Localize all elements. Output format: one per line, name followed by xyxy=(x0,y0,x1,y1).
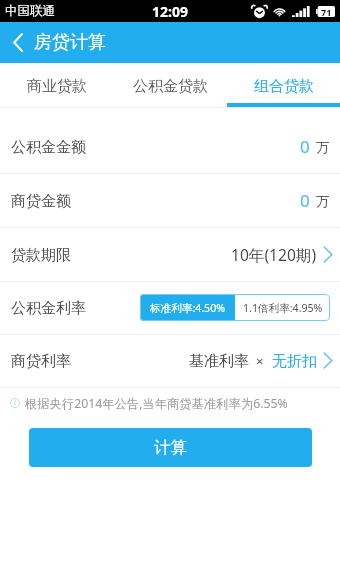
button[interactable]: 商业贷款 xyxy=(0,63,114,107)
staticText: 商业贷款 xyxy=(27,77,87,96)
staticText: × xyxy=(256,352,264,370)
button[interactable]: 公积金金额 xyxy=(0,120,340,173)
staticText: 标准利率:4.50% xyxy=(150,301,226,315)
staticText: 1.1倍利率:4.95% xyxy=(243,301,323,315)
button[interactable]: 计算 xyxy=(29,428,312,467)
staticText: 中国联通 xyxy=(5,3,55,19)
staticText: 公积金贷款 xyxy=(133,77,208,96)
staticText: 组合贷款 xyxy=(254,77,314,96)
other: Back xyxy=(13,34,23,51)
button[interactable]: 组合贷款 xyxy=(227,63,340,107)
staticText: 0 xyxy=(300,189,310,212)
staticText: 贷款期限 xyxy=(11,246,71,265)
staticText: 基准利率 xyxy=(189,352,249,371)
button[interactable]: Back xyxy=(0,31,114,54)
button[interactable]: 标准利率:4.50% xyxy=(140,294,235,321)
staticText: 公积金利率 xyxy=(11,299,86,318)
staticText: 房贷计算 xyxy=(34,31,106,54)
staticText: 商贷金额 xyxy=(11,192,71,211)
button[interactable]: 商贷利率 xyxy=(0,334,340,387)
button[interactable]: 公积金利率 xyxy=(0,281,340,334)
staticText: 商贷利率 xyxy=(11,352,71,371)
staticText: 万 xyxy=(316,193,330,210)
button[interactable]: 贷款期限 xyxy=(0,227,340,281)
button[interactable]: 商贷金额 xyxy=(0,173,340,227)
staticText: 万 xyxy=(316,139,330,156)
staticText: 0 xyxy=(300,135,310,158)
staticText: 根据央行2014年公告,当年商贷基准利率为6.55% xyxy=(25,395,288,412)
staticText: 公积金金额 xyxy=(11,138,86,157)
staticText: 计算 xyxy=(154,437,187,458)
staticText: 71 xyxy=(321,6,332,17)
staticText: 10年(120期) xyxy=(231,244,317,265)
button[interactable]: 1.1倍利率:4.95% xyxy=(235,294,330,321)
staticText: 12:09 xyxy=(152,2,188,21)
button[interactable]: 公积金贷款 xyxy=(114,63,227,107)
staticText: 无折扣 xyxy=(272,352,317,371)
